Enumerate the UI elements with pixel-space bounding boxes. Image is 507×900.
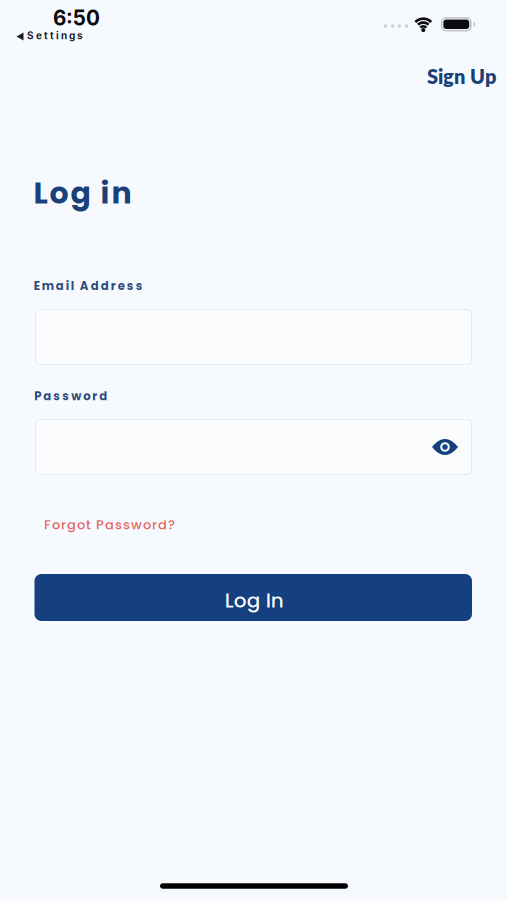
- staticText: L o g i n: [33, 172, 131, 214]
- staticText: 6:50: [53, 6, 100, 31]
- button[interactable]: Log In: [34, 574, 472, 621]
- staticText: E m a i l A d d r e s s: [34, 278, 143, 294]
- staticText: Log In: [225, 586, 284, 614]
- staticText: Sign Up: [427, 64, 497, 88]
- button[interactable]: F o r g o t P a s s w o r d ?: [44, 516, 264, 538]
- button[interactable]: Show password: [432, 439, 458, 455]
- staticText: F o r g o t P a s s w o r d ?: [44, 516, 175, 534]
- button[interactable]: Sign Up: [427, 64, 507, 94]
- staticText: S e t t i n g s: [27, 30, 83, 42]
- staticText: P a s s w o r d: [34, 388, 107, 404]
